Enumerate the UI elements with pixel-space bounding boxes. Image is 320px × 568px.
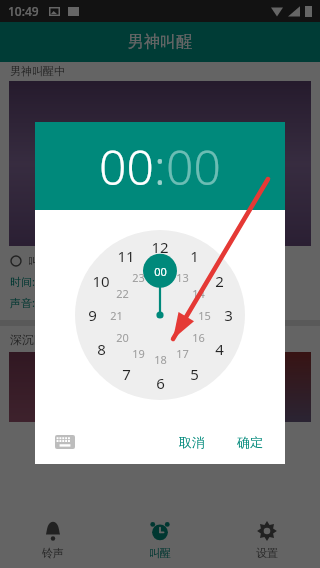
staticText: 4 <box>215 339 224 359</box>
staticText: 11 <box>117 246 135 266</box>
staticText: 10 <box>92 271 110 291</box>
staticText: 6 <box>156 373 165 393</box>
staticText: 13 <box>176 270 189 285</box>
staticText: 19 <box>132 346 145 361</box>
button[interactable]: 11 <box>117 246 135 266</box>
button[interactable]: Keyboard input <box>49 426 81 458</box>
staticText: 男神叫醒 <box>128 32 192 52</box>
button[interactable]: 17 <box>176 346 189 361</box>
staticText: 铃声 <box>42 546 64 560</box>
staticText: 叫醒时间 <box>28 254 72 268</box>
staticText: 00 <box>99 134 154 199</box>
button[interactable]: 22 <box>116 286 129 301</box>
button[interactable]: 00 <box>166 134 221 199</box>
staticText: 16 <box>192 330 205 345</box>
staticText: 14 <box>192 286 205 301</box>
staticText: 5 <box>190 364 199 384</box>
button[interactable]: 9 <box>88 305 97 325</box>
button[interactable]: 4 <box>215 339 224 359</box>
button[interactable]: 18 <box>154 352 167 367</box>
button[interactable]: 5 <box>190 364 199 384</box>
button[interactable]: 00 <box>154 264 167 279</box>
staticText: 22 <box>116 286 129 301</box>
button[interactable]: 23 <box>132 270 145 285</box>
button[interactable]: 16 <box>192 330 205 345</box>
button[interactable]: 12 <box>151 237 169 257</box>
staticText: 3 <box>224 305 233 325</box>
staticText: 18 <box>154 352 167 367</box>
button[interactable]: 14 <box>192 286 205 301</box>
staticText: 时间: 00:00 <box>10 274 66 289</box>
staticText: 2 <box>215 271 224 291</box>
button[interactable]: 2 <box>215 271 224 291</box>
button[interactable]: 20 <box>116 330 129 345</box>
button[interactable]: 00 <box>99 134 154 199</box>
staticText: 9 <box>88 305 97 325</box>
button[interactable]: 10 <box>92 271 110 291</box>
button[interactable]: 1 <box>190 246 199 266</box>
button[interactable]: 设置 <box>213 512 320 568</box>
button[interactable]: 取消 <box>167 428 217 456</box>
button[interactable]: 15 <box>198 308 211 323</box>
button[interactable]: 6 <box>156 373 165 393</box>
staticText: 7 <box>122 364 131 384</box>
staticText: 20 <box>116 330 129 345</box>
button[interactable]: 13 <box>176 270 189 285</box>
staticText: 00 <box>166 134 221 199</box>
staticText: : <box>154 134 166 199</box>
staticText: 15 <box>198 308 211 323</box>
button[interactable]: 确定 <box>225 428 275 456</box>
staticText: 男神叫醒中 <box>10 64 65 78</box>
staticText: 取消 <box>179 434 205 450</box>
staticText: 12 <box>151 237 169 257</box>
staticText: 确定 <box>237 434 263 450</box>
staticText: 21 <box>110 308 123 323</box>
staticText: 23 <box>132 270 145 285</box>
button[interactable]: 3 <box>224 305 233 325</box>
button[interactable]: 8 <box>97 339 106 359</box>
button[interactable]: 19 <box>132 346 145 361</box>
staticText: 10:49 <box>8 3 39 19</box>
button[interactable]: 铃声 <box>0 512 106 568</box>
staticText: 深沉睡眠唤醒 <box>10 332 82 347</box>
staticText: 声音: 默认 <box>10 295 60 310</box>
staticText: 设置 <box>256 546 278 560</box>
staticText: 8 <box>97 339 106 359</box>
staticText: 1 <box>190 246 199 266</box>
button[interactable]: 叫醒 <box>106 512 213 568</box>
staticText: 00 <box>154 264 167 279</box>
staticText: 叫醒 <box>149 546 171 560</box>
staticText: 17 <box>176 346 189 361</box>
button[interactable]: 7 <box>122 364 131 384</box>
button[interactable]: 21 <box>110 308 123 323</box>
